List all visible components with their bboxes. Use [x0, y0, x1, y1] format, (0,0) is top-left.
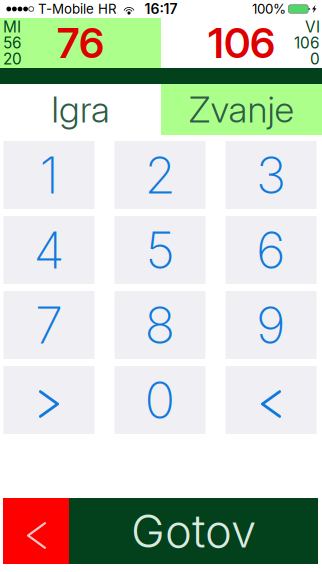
staticText: Zvanje [188, 88, 294, 131]
button[interactable] [3, 366, 94, 434]
staticText: 16:17 [144, 0, 177, 17]
staticText: 9 [256, 294, 286, 356]
staticText: 5 [145, 219, 174, 281]
button[interactable]: 9 [225, 291, 316, 359]
staticText: 76 [57, 18, 104, 68]
staticText: 6 [256, 219, 286, 281]
button[interactable]: 0 [114, 366, 205, 434]
button[interactable]: Igra [0, 84, 161, 135]
button[interactable]: 2 [114, 141, 205, 209]
button[interactable]: 6 [225, 216, 316, 284]
staticText: Igra [51, 88, 110, 131]
staticText: MI [3, 18, 21, 36]
staticText: 106 [294, 34, 320, 52]
staticText: 0 [144, 369, 175, 431]
staticText: 20 [3, 50, 22, 68]
staticText: 8 [144, 294, 175, 356]
staticText: 100% [252, 1, 286, 17]
button[interactable]: 5 [114, 216, 205, 284]
button[interactable]: Zvanje [161, 84, 322, 135]
button[interactable]: 1 [3, 141, 94, 209]
staticText: 2 [144, 144, 175, 206]
button[interactable]: 3 [225, 141, 316, 209]
staticText: 4 [33, 219, 64, 281]
staticText: 56 [3, 34, 22, 52]
button[interactable]: 7 [3, 291, 94, 359]
staticText: T-Mobile HR [38, 1, 117, 17]
button[interactable]: Back [3, 498, 69, 564]
staticText: 0 [310, 50, 320, 68]
button[interactable] [225, 366, 316, 434]
staticText: VI [305, 18, 320, 36]
staticText: Gotov [131, 504, 256, 558]
staticText: 7 [35, 294, 63, 356]
button[interactable]: 4 [3, 216, 94, 284]
staticText: 106 [208, 18, 275, 68]
button[interactable]: 8 [114, 291, 205, 359]
button[interactable]: Gotov [69, 498, 318, 564]
staticText: 1 [39, 144, 58, 206]
staticText: 3 [256, 144, 286, 206]
